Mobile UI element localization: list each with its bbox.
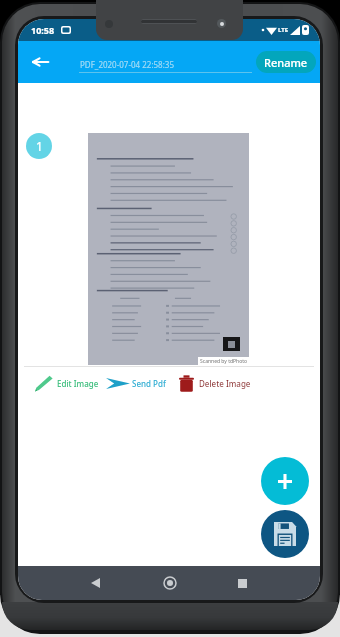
staticText: 10:58 xyxy=(31,24,55,36)
button[interactable]: Send Pdf xyxy=(106,370,166,396)
button[interactable]: Save xyxy=(261,510,309,558)
button[interactable]: Back xyxy=(24,46,56,78)
button[interactable]: Add page xyxy=(261,457,309,505)
staticText: Send Pdf xyxy=(132,378,166,389)
button[interactable]: PDF_2020-07-04 22:58:35 xyxy=(79,59,252,73)
button[interactable]: Rename xyxy=(256,51,316,73)
staticText: Edit Image xyxy=(57,378,99,389)
staticText: Scanned by tdPhoto xyxy=(200,358,248,365)
staticText: Delete Image xyxy=(199,378,251,389)
button[interactable]: Back xyxy=(78,566,112,600)
button[interactable]: Scanned by tdPhoto xyxy=(24,132,314,404)
button[interactable]: Recents xyxy=(225,566,259,600)
button[interactable]: Delete Image xyxy=(179,370,251,396)
button[interactable]: Edit Image xyxy=(34,370,99,396)
staticText: Rename xyxy=(264,55,308,70)
staticText: PDF_2020-07-04 22:58:35 xyxy=(80,59,174,70)
button[interactable]: Home xyxy=(153,566,187,600)
staticText: LTE xyxy=(278,26,289,34)
staticText: 1 xyxy=(36,138,43,154)
